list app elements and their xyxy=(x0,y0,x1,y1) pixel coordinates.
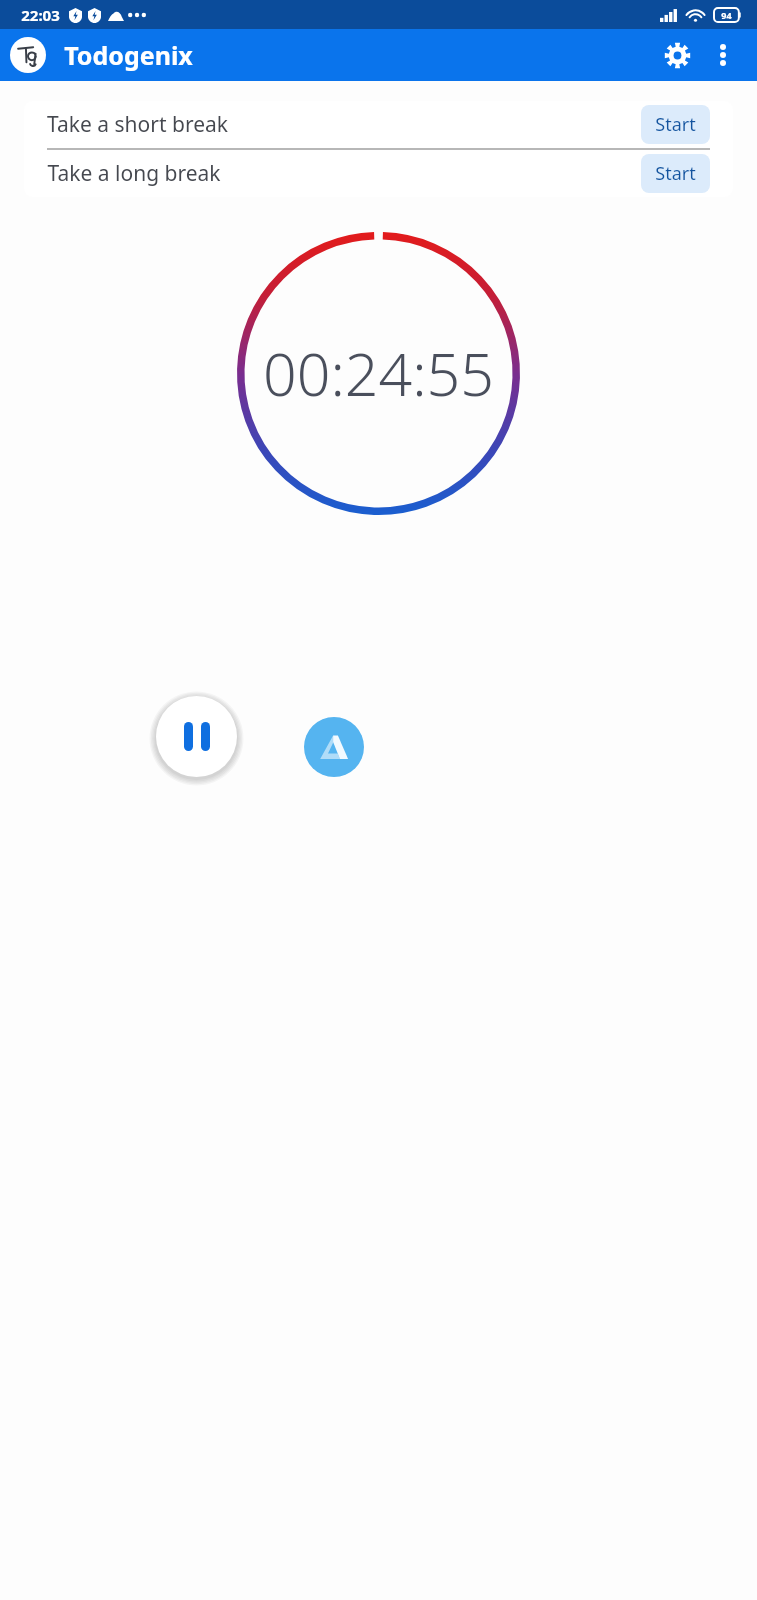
button[interactable]: App logo xyxy=(10,37,46,73)
staticText: 22:03 xyxy=(21,5,60,25)
staticText: Start xyxy=(655,112,696,137)
button[interactable]: Pause xyxy=(151,691,242,782)
button[interactable]: Start xyxy=(641,154,710,193)
staticText: Take a long break xyxy=(47,159,221,188)
button[interactable]: Take a long break xyxy=(24,150,733,197)
staticText: 94 xyxy=(721,9,732,21)
button[interactable]: Take a short break xyxy=(24,101,733,148)
staticText: 00:24:55 xyxy=(263,333,494,413)
staticText: Start xyxy=(655,161,696,186)
button[interactable]: Start xyxy=(641,105,710,144)
button[interactable]: More options xyxy=(701,33,745,77)
button[interactable]: Open assistant xyxy=(304,717,364,777)
button[interactable]: Settings xyxy=(653,31,701,79)
staticText: Take a short break xyxy=(47,110,228,139)
staticText: Todogenix xyxy=(64,38,193,72)
